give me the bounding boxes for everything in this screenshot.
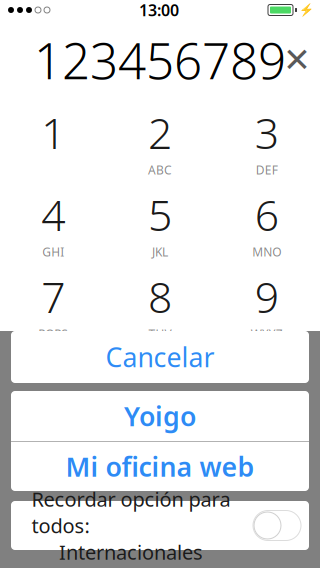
staticText: PQRS: [38, 326, 68, 342]
staticText: ✕: [283, 41, 311, 79]
button[interactable]: Cancelar: [11, 331, 309, 383]
button[interactable]: Borrar: [274, 37, 320, 83]
button[interactable]: 1: [0, 100, 107, 182]
staticText: 13:00: [139, 0, 179, 21]
staticText: 6: [255, 186, 279, 243]
staticText: Yoigo: [124, 398, 196, 434]
button[interactable]: 0: [107, 346, 213, 428]
staticText: 0: [148, 350, 172, 407]
staticText: ⚡: [299, 3, 314, 17]
staticText: 5: [148, 186, 172, 243]
staticText: 2: [148, 104, 172, 161]
staticText: DEF: [256, 162, 278, 178]
staticText: #: [253, 350, 281, 407]
staticText: 1: [41, 104, 65, 161]
staticText: 123456789: [34, 27, 286, 93]
staticText: 8: [148, 268, 172, 325]
button[interactable]: 2: [107, 100, 213, 182]
staticText: 3: [255, 104, 279, 161]
staticText: WXYZ: [251, 326, 283, 342]
button[interactable]: Mi oficina web: [11, 442, 309, 491]
staticText: Mi oficina web: [65, 449, 254, 484]
button[interactable]: 4: [0, 182, 107, 264]
button[interactable]: Recordar opción: [251, 505, 303, 545]
button[interactable]: 6: [213, 182, 320, 264]
staticText: ABC: [148, 162, 172, 178]
staticText: 9: [255, 268, 279, 325]
staticText: 7: [41, 268, 65, 325]
staticText: GHI: [42, 244, 64, 260]
button[interactable]: 7: [0, 264, 107, 346]
staticText: MNO: [252, 244, 281, 260]
staticText: JKL: [152, 244, 168, 260]
staticText: ✳: [35, 354, 71, 403]
staticText: Internacionales: [59, 539, 203, 565]
staticText: Cancelar: [105, 339, 214, 375]
button[interactable]: ✳: [0, 346, 107, 428]
staticText: +: [156, 408, 163, 424]
button[interactable]: #: [213, 346, 320, 428]
button[interactable]: 5: [107, 182, 213, 264]
button[interactable]: Yoigo: [11, 391, 309, 441]
button[interactable]: 9: [213, 264, 320, 346]
staticText: 4: [41, 186, 65, 243]
button[interactable]: 3: [213, 100, 320, 182]
staticText: Recordar opción para todos:: [31, 486, 230, 539]
button[interactable]: 8: [107, 264, 213, 346]
staticText: TUV: [148, 326, 171, 342]
